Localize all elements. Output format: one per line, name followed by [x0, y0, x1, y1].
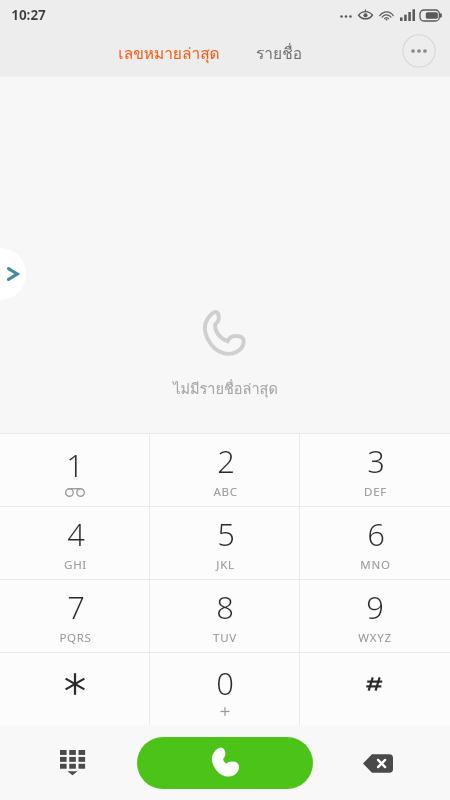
button[interactable]: 1 [0, 434, 150, 506]
staticText: 7 [67, 586, 85, 628]
button[interactable]: 7 [0, 580, 150, 652]
button[interactable]: More options [402, 34, 436, 68]
staticText: 4 [67, 513, 85, 555]
button[interactable]: 0 [150, 653, 300, 725]
staticText: 6 [367, 513, 385, 555]
staticText: GHI [64, 557, 87, 573]
button[interactable]: 8 [150, 580, 300, 652]
staticText: 10:27 [11, 6, 46, 24]
staticText: WXYZ [358, 630, 392, 646]
staticText: ABC [213, 484, 238, 500]
button[interactable]: 2 [150, 434, 300, 506]
button[interactable]: เลขหมายล่าสุด [112, 37, 226, 70]
button[interactable]: Expand panel [0, 248, 26, 300]
button[interactable]: Hide keypad [50, 741, 94, 785]
button[interactable]: 4 [0, 507, 150, 579]
staticText: 1 [66, 444, 84, 486]
staticText: 2 [217, 440, 235, 482]
button[interactable] [300, 653, 450, 725]
button[interactable]: 6 [300, 507, 450, 579]
staticText: JKL [216, 557, 235, 573]
staticText: รายชื่อ [256, 41, 302, 66]
button[interactable]: 5 [150, 507, 300, 579]
button[interactable]: Backspace [356, 741, 400, 785]
staticText: MNO [360, 557, 391, 573]
staticText: 9 [366, 586, 384, 628]
button[interactable]: รายชื่อ [250, 37, 308, 70]
staticText: 0 [216, 662, 234, 704]
staticText: เลขหมายล่าสุด [118, 41, 220, 66]
button[interactable]: 9 [300, 580, 450, 652]
staticText: PQRS [59, 630, 92, 646]
staticText: 3 [367, 440, 385, 482]
button[interactable]: , [0, 653, 150, 725]
staticText: ไม่มีรายชื่อล่าสุด [173, 377, 278, 400]
staticText: DEF [364, 484, 387, 500]
staticText: TUV [213, 630, 237, 646]
staticText: 5 [217, 513, 235, 555]
staticText: 8 [216, 586, 234, 628]
button[interactable]: 3 [300, 434, 450, 506]
button[interactable]: Call [137, 737, 313, 789]
